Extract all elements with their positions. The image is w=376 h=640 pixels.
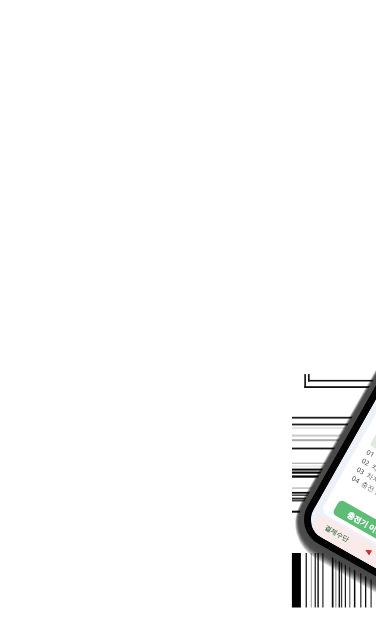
staticText: 03 차지비 결제 bbox=[355, 465, 376, 496]
button[interactable]: 충전기 이용안내 bbox=[332, 499, 376, 555]
staticText: 충전기 이용안내 bbox=[345, 509, 376, 546]
staticText: 01 충전기 선택 bbox=[365, 448, 376, 479]
other: Alert bbox=[364, 547, 372, 555]
button[interactable]: 결제수단 bbox=[309, 513, 376, 583]
staticText: 결제수단 bbox=[323, 524, 351, 544]
staticText: 02 차량에 연결 bbox=[360, 456, 376, 488]
staticText: 04 충전 종료하기 bbox=[350, 474, 376, 508]
